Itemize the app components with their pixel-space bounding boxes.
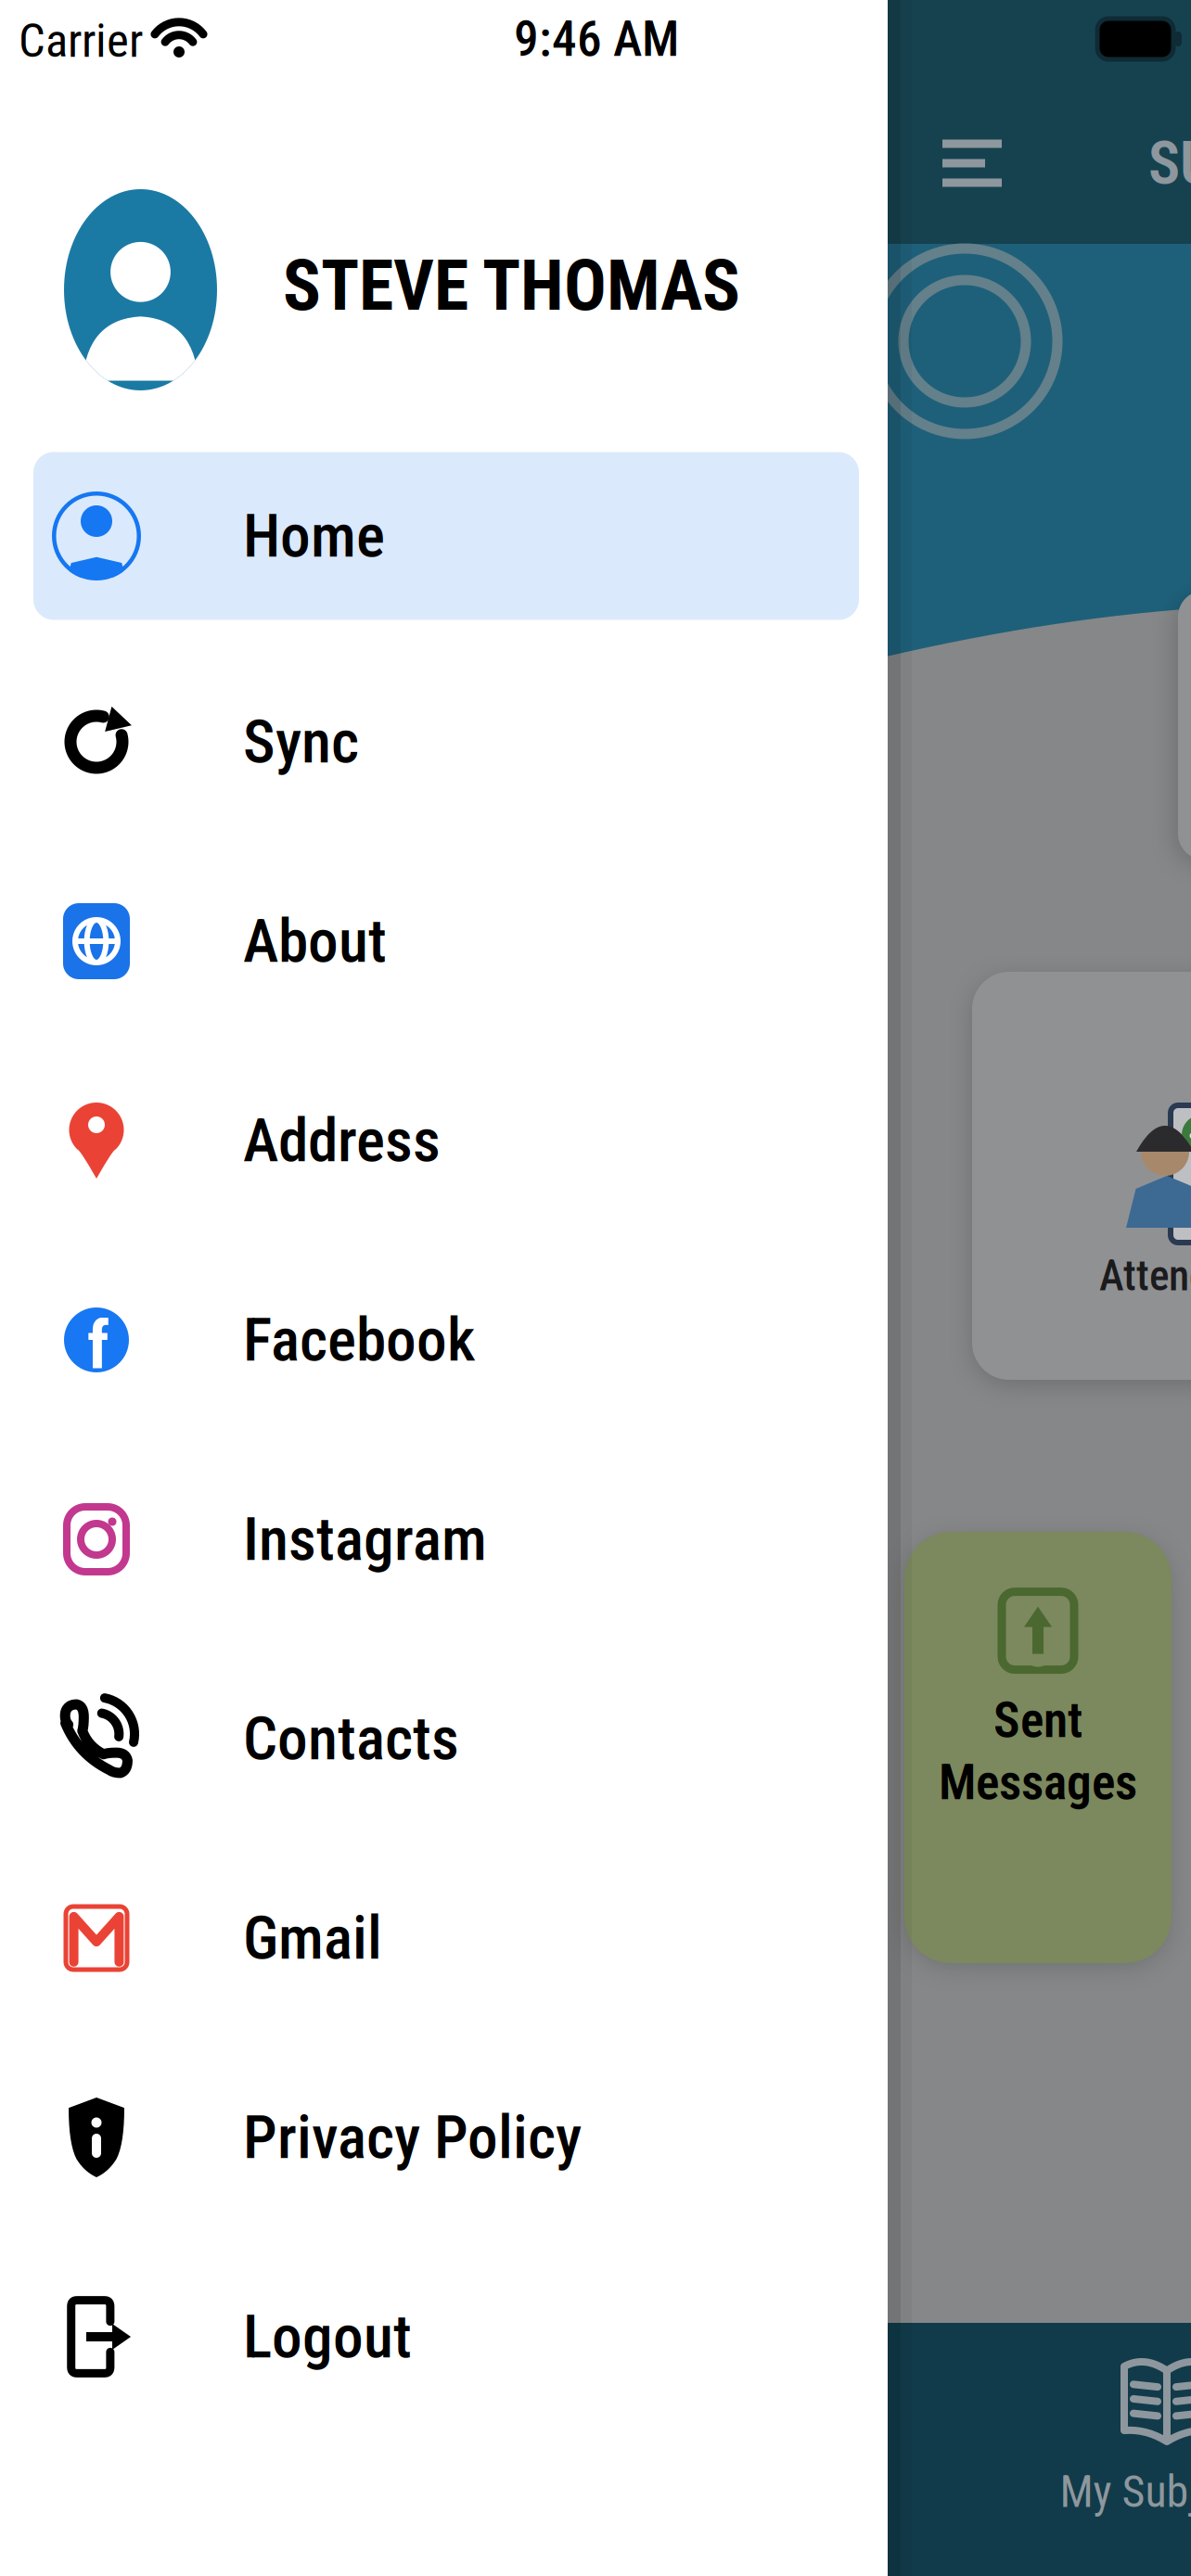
staticText: Carrier bbox=[19, 14, 143, 68]
staticText: Home bbox=[243, 501, 385, 571]
button[interactable]: Menu bbox=[942, 140, 1002, 186]
button[interactable]: f bbox=[33, 1256, 859, 1424]
staticText: Contacts bbox=[243, 1704, 459, 1773]
staticText: Attendance bbox=[1099, 1252, 1191, 1300]
button[interactable]: Home bbox=[33, 452, 859, 620]
button[interactable]: Contacts bbox=[33, 1655, 859, 1823]
button[interactable]: Attendance bbox=[972, 972, 1191, 1380]
staticText: Logout bbox=[243, 2302, 412, 2371]
staticText: STEVE THOMAS bbox=[283, 245, 740, 326]
button[interactable]: Instagram bbox=[33, 1455, 859, 1623]
button[interactable]: Address bbox=[33, 1057, 859, 1224]
button[interactable]: Logout bbox=[33, 2253, 859, 2421]
staticText: Sync bbox=[243, 707, 359, 776]
staticText: 9:46 AM bbox=[514, 11, 679, 67]
staticText: Facebook bbox=[243, 1305, 475, 1375]
staticText: Privacy Policy bbox=[243, 2103, 582, 2172]
staticText: My Subjects bbox=[1060, 2466, 1191, 2517]
staticText: f bbox=[87, 1307, 109, 1384]
staticText: SUBJECTS bbox=[1148, 129, 1191, 197]
staticText: Gmail bbox=[243, 1903, 382, 1973]
button[interactable]: Sync bbox=[33, 658, 859, 826]
button[interactable]: Gmail bbox=[33, 1854, 859, 2022]
staticText: About bbox=[243, 907, 387, 976]
staticText: Instagram bbox=[243, 1505, 487, 1574]
button[interactable]: Sent bbox=[904, 1532, 1172, 1963]
button[interactable]: Privacy Policy bbox=[33, 2053, 859, 2221]
staticText: Messages bbox=[939, 1754, 1137, 1810]
staticText: Address bbox=[243, 1106, 441, 1175]
staticText: Sent bbox=[993, 1692, 1082, 1748]
button[interactable]: My Subjects bbox=[1028, 2337, 1191, 2541]
button[interactable]: About bbox=[33, 857, 859, 1025]
